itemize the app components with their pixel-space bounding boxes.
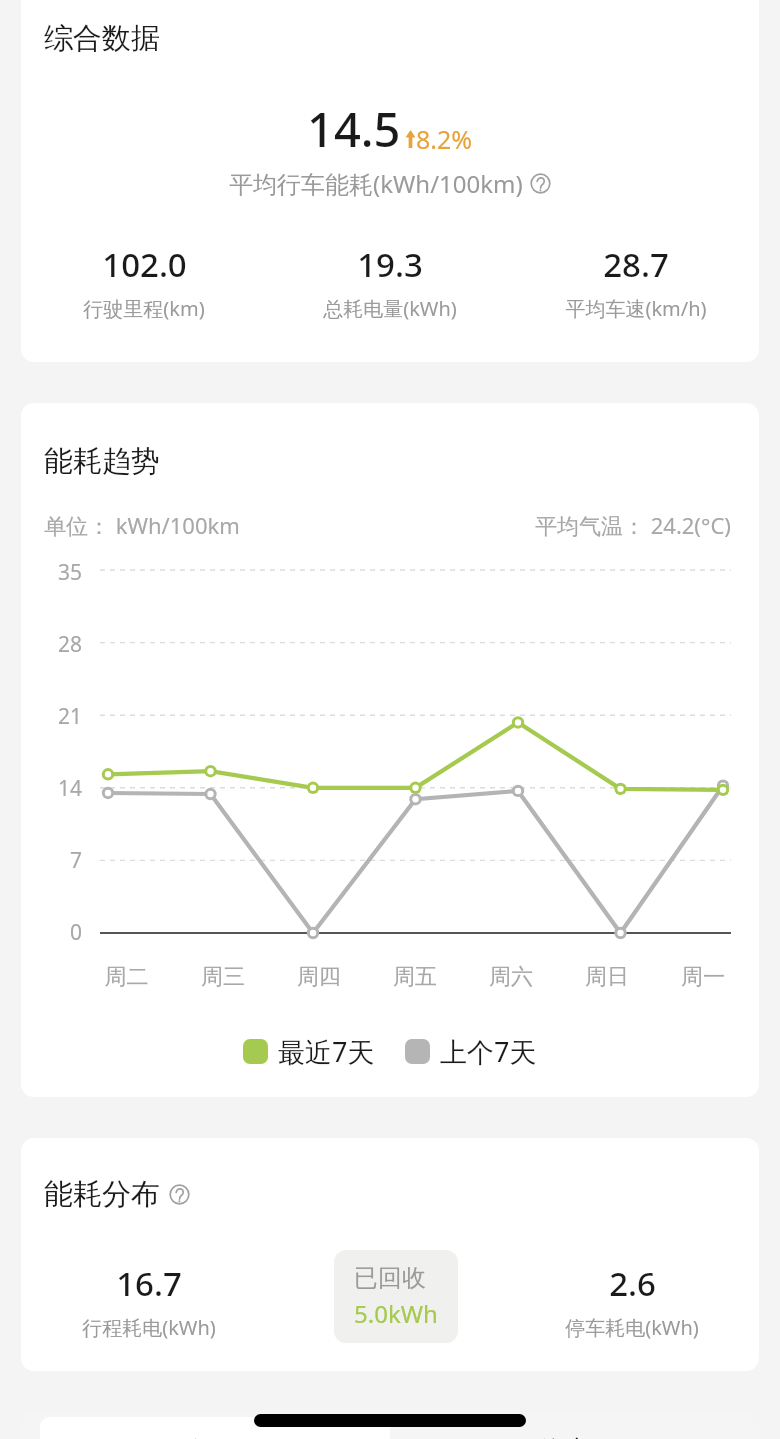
staticText: 平均车速(km/h) xyxy=(565,295,707,322)
button[interactable]: 已回收 xyxy=(334,1250,458,1343)
staticText: 周日 xyxy=(559,963,655,991)
button[interactable]: 2.6 xyxy=(505,1261,759,1341)
button[interactable]: 停车 xyxy=(390,1417,740,1439)
staticText: 102.0 xyxy=(102,242,187,287)
staticText: 行程 xyxy=(188,1434,242,1439)
button[interactable]: 行程 xyxy=(40,1417,390,1439)
staticText: 28 xyxy=(42,630,82,659)
staticText: 5.0kWh xyxy=(354,1297,438,1330)
button[interactable]: 16.7 xyxy=(21,1261,276,1341)
staticText: 已回收 xyxy=(354,1263,426,1293)
button[interactable]: 能耗分布说明 xyxy=(169,1184,190,1205)
staticText: 2.6 xyxy=(609,1261,656,1306)
staticText: 周三 xyxy=(175,963,271,991)
button[interactable]: 能耗分布 xyxy=(21,1138,759,1371)
staticText: 上个7天 xyxy=(440,1033,537,1070)
staticText: 7 xyxy=(42,846,82,875)
staticText: 单位： kWh/100km xyxy=(44,510,240,540)
staticText: 停车耗电(kWh) xyxy=(565,1314,699,1341)
staticText: 周二 xyxy=(78,963,175,991)
button[interactable]: 28.7 xyxy=(513,242,759,322)
staticText: 35 xyxy=(42,558,82,587)
staticText: 0 xyxy=(42,918,82,947)
staticText: 8.2% xyxy=(416,122,473,156)
staticText: 行程耗电(kWh) xyxy=(82,1314,216,1341)
staticText: 最近7天 xyxy=(278,1033,375,1070)
button[interactable]: 最近7天 xyxy=(243,1033,375,1070)
staticText: 能耗分布 xyxy=(44,1176,160,1213)
staticText: 综合数据 xyxy=(44,20,160,57)
staticText: 周四 xyxy=(271,963,367,991)
staticText: 14.5 xyxy=(307,97,401,161)
staticText: 平均气温： 24.2(°C) xyxy=(535,510,731,540)
staticText: 周一 xyxy=(655,963,751,991)
staticText: 16.7 xyxy=(116,1261,182,1306)
staticText: 总耗电量(kWh) xyxy=(323,295,457,322)
button[interactable]: 102.0 xyxy=(21,242,267,322)
staticText: 21 xyxy=(42,702,82,731)
staticText: 行驶里程(km) xyxy=(83,295,205,322)
staticText: 28.7 xyxy=(603,242,669,287)
button[interactable]: 平均行车能耗说明 xyxy=(530,173,551,194)
staticText: 停车 xyxy=(538,1434,592,1439)
staticText: 能耗趋势 xyxy=(44,443,160,480)
button[interactable]: 19.3 xyxy=(267,242,513,322)
staticText: 19.3 xyxy=(357,242,423,287)
staticText: 周六 xyxy=(463,963,559,991)
staticText: 14 xyxy=(42,774,82,803)
button[interactable]: 能耗趋势 xyxy=(21,403,759,1097)
button[interactable]: 上个7天 xyxy=(405,1033,537,1070)
button[interactable]: 综合数据 xyxy=(21,0,759,362)
staticText: 周五 xyxy=(367,963,463,991)
staticText: 平均行车能耗(kWh/100km) xyxy=(229,167,523,200)
